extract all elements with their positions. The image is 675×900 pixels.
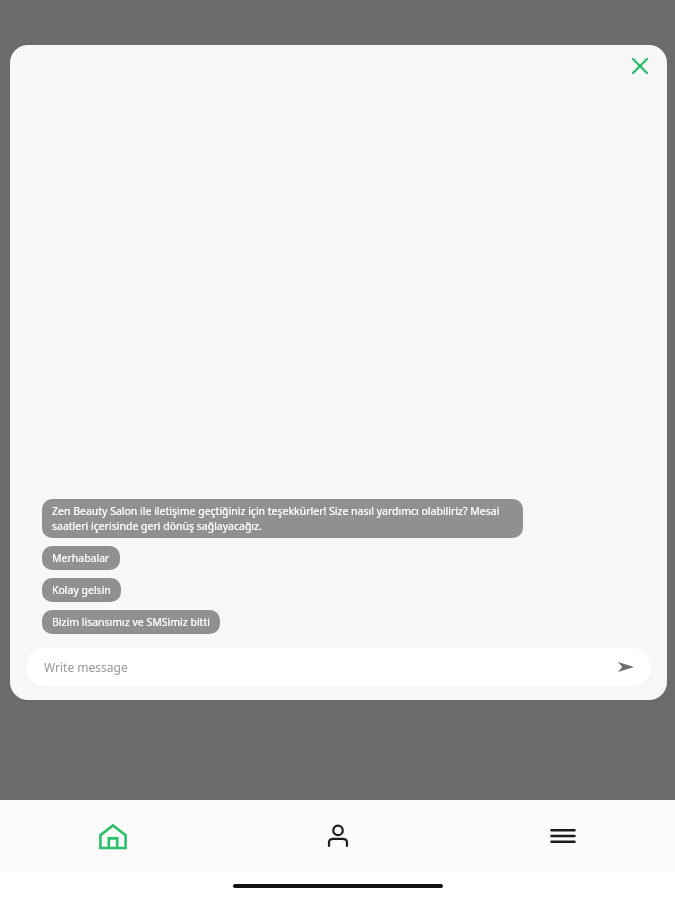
- staticText: Botpanel: [58, 29, 171, 64]
- button[interactable]: Send: [615, 656, 637, 678]
- staticText: Merhabalar: [52, 551, 110, 565]
- button[interactable]: Merhabalar: [42, 546, 120, 570]
- staticText: Write message: [44, 659, 128, 675]
- button[interactable]: Close: [625, 51, 655, 81]
- button[interactable]: Kolay gelsin: [42, 578, 121, 602]
- staticText: Bizim lisansımız ve SMSimiz bitti: [52, 615, 210, 629]
- staticText: Çanakkale Yazılım Akademisi: [34, 689, 236, 709]
- staticText: Kolay gelsin: [52, 583, 111, 597]
- staticText: Zen Beauty Salon ile iletişime geçtiğini…: [52, 504, 513, 533]
- button[interactable]: Home: [0, 800, 225, 872]
- button[interactable]: Zen Beauty Salon ile iletişime geçtiğini…: [42, 499, 523, 538]
- button[interactable]: Write message: [26, 648, 651, 686]
- button[interactable]: Back: [14, 29, 48, 63]
- button[interactable]: Menu: [450, 800, 675, 872]
- staticText: 21.06.2023 (14:46): [480, 690, 600, 709]
- button[interactable]: Bizim lisansımız ve SMSimiz bitti: [42, 610, 220, 634]
- button[interactable]: Inbox: [619, 28, 661, 64]
- button[interactable]: Çanakkale Yazılım Akademisi: [20, 684, 655, 714]
- button[interactable]: Profile: [225, 800, 450, 872]
